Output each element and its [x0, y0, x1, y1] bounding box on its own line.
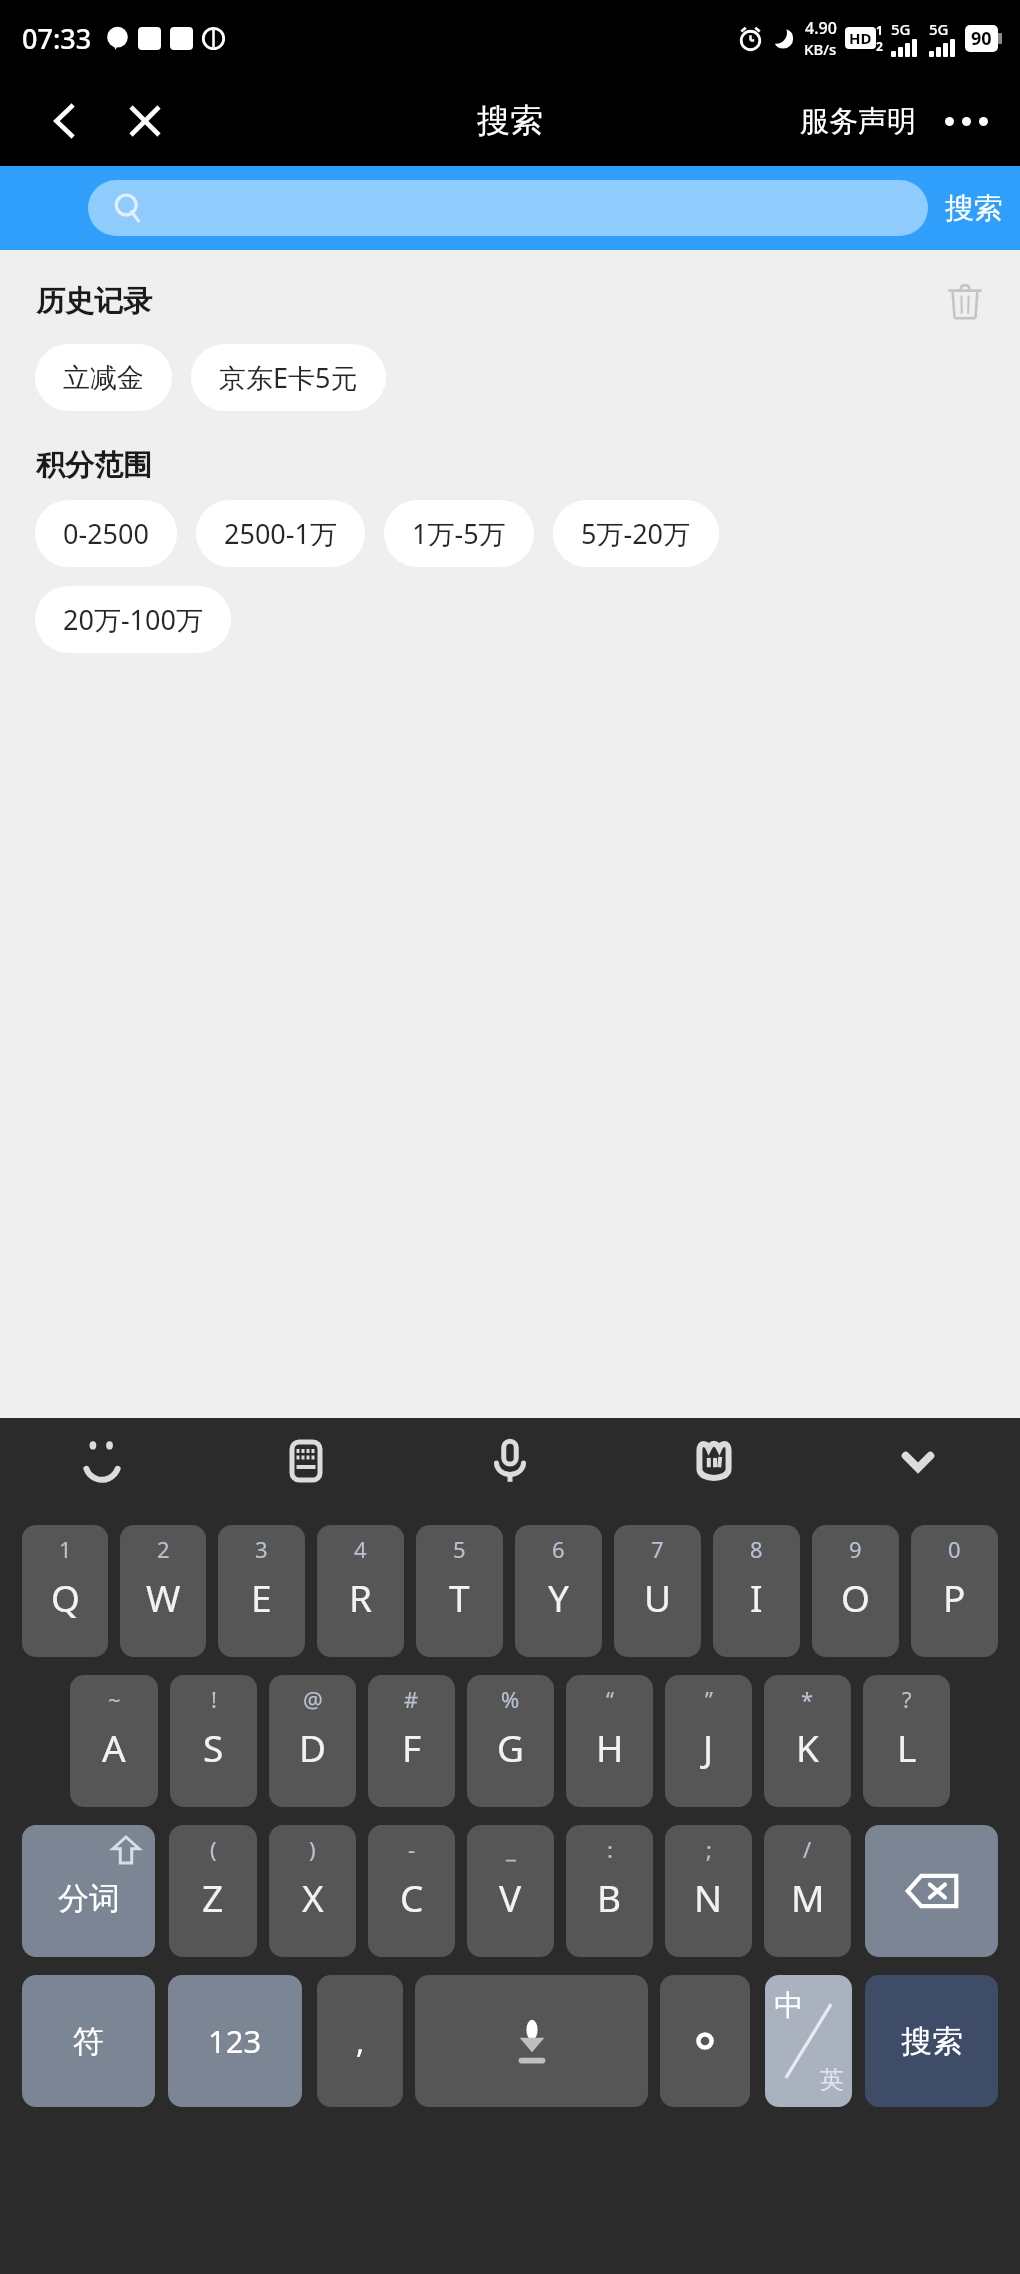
staticText: ) [309, 1834, 316, 1864]
staticText: N [694, 1872, 723, 1922]
staticText: Q [51, 1572, 80, 1622]
button[interactable]: @ [269, 1675, 356, 1807]
staticText: 20万-100万 [63, 601, 203, 638]
staticText: ? [902, 1684, 912, 1714]
button[interactable]: 分词 [22, 1825, 155, 1957]
staticText: A [102, 1722, 126, 1772]
button[interactable]: Baidu input [612, 1418, 816, 1503]
staticText: @ [303, 1684, 323, 1714]
button[interactable]: ! [170, 1675, 257, 1807]
button[interactable]: 服务声明 [794, 93, 922, 150]
staticText: ; [706, 1834, 712, 1864]
staticText: 搜索 [477, 100, 543, 142]
button[interactable]: 搜索 [928, 180, 1020, 237]
button[interactable]: 9 [812, 1525, 899, 1657]
button[interactable]: Switch Chinese English [765, 1975, 852, 2107]
staticText: J [703, 1722, 714, 1772]
staticText: 5G [929, 19, 949, 39]
button[interactable]: “ [566, 1675, 653, 1807]
staticText: HD [849, 28, 872, 48]
staticText: 2500-1万 [224, 515, 337, 552]
staticText: 4.90 [805, 17, 837, 39]
button[interactable]: ~ [70, 1675, 158, 1807]
staticText: 0 [948, 1534, 961, 1564]
staticText: E [251, 1572, 272, 1622]
staticText: Y [548, 1572, 569, 1622]
button[interactable]: 20万-100万 [35, 586, 231, 653]
staticText: 07:33 [22, 20, 92, 57]
button[interactable]: # [368, 1675, 455, 1807]
button[interactable]: 立减金 [35, 344, 172, 411]
button[interactable]: * [764, 1675, 851, 1807]
button[interactable]: 搜索 [865, 1975, 998, 2107]
staticText: 1 [59, 1534, 72, 1564]
button[interactable]: : [566, 1825, 653, 1957]
button[interactable]: 8 [713, 1525, 800, 1657]
button[interactable]: 5 [416, 1525, 503, 1657]
button[interactable]: ? [863, 1675, 950, 1807]
button[interactable]: 123 [168, 1975, 302, 2107]
button[interactable]: _ [467, 1825, 554, 1957]
button[interactable]: / [764, 1825, 851, 1957]
staticText: 5 [453, 1534, 466, 1564]
staticText: KB/s [804, 39, 837, 59]
button[interactable]: More options [936, 91, 996, 151]
button[interactable]: 2 [120, 1525, 206, 1657]
staticText: % [501, 1684, 520, 1714]
button[interactable]: 2500-1万 [196, 500, 365, 567]
button[interactable]: ; [665, 1825, 752, 1957]
staticText: 123 [208, 2020, 262, 2062]
button[interactable]: 0 [911, 1525, 998, 1657]
button[interactable]: Space [415, 1975, 648, 2107]
button[interactable]: 5万-20万 [553, 500, 719, 567]
button[interactable]: 6 [515, 1525, 602, 1657]
button[interactable]: Emoji [0, 1418, 204, 1503]
staticText: L [897, 1722, 917, 1772]
staticText: # [404, 1684, 419, 1714]
button[interactable]: Voice input [408, 1418, 612, 1503]
button[interactable]: ” [665, 1675, 752, 1807]
staticText: T [449, 1572, 470, 1622]
staticText: V [499, 1872, 522, 1922]
staticText: P [943, 1572, 966, 1622]
staticText: 3 [255, 1534, 268, 1564]
button[interactable]: ) [269, 1825, 356, 1957]
staticText: O [841, 1572, 870, 1622]
button[interactable]: 4 [317, 1525, 404, 1657]
button[interactable]: , [317, 1975, 403, 2107]
staticText: F [402, 1722, 422, 1772]
button[interactable]: 0-2500 [35, 500, 177, 567]
staticText: M [791, 1872, 825, 1922]
button[interactable]: Clear history [938, 274, 992, 328]
button[interactable]: Hide keyboard [816, 1418, 1020, 1503]
staticText: 6 [552, 1534, 565, 1564]
staticText: ! [211, 1684, 217, 1714]
button[interactable]: % [467, 1675, 554, 1807]
staticText: 中 [774, 1987, 803, 2024]
button[interactable]: 1 [22, 1525, 108, 1657]
staticText: 7 [651, 1534, 664, 1564]
button[interactable] [660, 1975, 750, 2107]
button[interactable]: 7 [614, 1525, 701, 1657]
button[interactable]: ( [169, 1825, 257, 1957]
staticText: 1万-5万 [412, 515, 506, 552]
staticText: H [596, 1722, 624, 1772]
button[interactable]: Keyboard layout [204, 1418, 408, 1503]
staticText: 积分范围 [36, 447, 152, 484]
button[interactable]: Back [34, 90, 96, 152]
button[interactable]: - [368, 1825, 455, 1957]
button[interactable]: 1万-5万 [384, 500, 534, 567]
staticText: S [203, 1722, 224, 1772]
staticText: I [750, 1572, 763, 1622]
button[interactable]: 京东E卡5元 [191, 344, 386, 411]
staticText: “ [606, 1684, 614, 1714]
staticText: 5G [891, 19, 911, 39]
button[interactable]: Close [114, 90, 176, 152]
button[interactable]: 3 [218, 1525, 305, 1657]
button[interactable]: 符 [22, 1975, 155, 2107]
staticText: 0-2500 [63, 515, 149, 552]
staticText: K [796, 1722, 819, 1772]
staticText: D [299, 1722, 327, 1772]
button[interactable] [88, 180, 928, 236]
button[interactable]: Backspace [865, 1825, 998, 1957]
